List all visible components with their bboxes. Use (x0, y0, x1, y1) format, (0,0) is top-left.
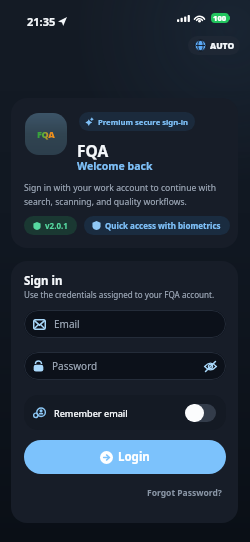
staticText: FQA (37, 128, 55, 140)
staticText: Forgot Password? (147, 487, 222, 499)
staticText: Welcome back (77, 159, 153, 173)
button[interactable]: v2.0.1 (24, 216, 77, 235)
staticText: Email (54, 317, 80, 331)
staticText: Quick access with biometrics (105, 220, 221, 231)
button[interactable]: Login (24, 440, 226, 474)
button[interactable]: Premium secure sign-in (79, 112, 195, 131)
staticText: v2.0.1 (45, 220, 68, 231)
staticText: 21:35 (27, 14, 56, 29)
staticText: Sign in (24, 273, 63, 289)
button[interactable]: Forgot Password? (147, 487, 222, 499)
staticText: AUTO (210, 40, 235, 52)
staticText: Premium secure sign-in (98, 117, 188, 127)
button[interactable]: Show password (204, 361, 217, 372)
staticText: Sign in with your work account to contin… (24, 182, 228, 208)
staticText: 100 (213, 13, 227, 23)
button[interactable]: Remember email (24, 395, 226, 430)
staticText: FQA (77, 140, 109, 161)
button[interactable]: Password (24, 352, 226, 380)
staticText: Remember email (54, 407, 128, 419)
staticText: Password (52, 359, 98, 373)
staticText: Login (118, 449, 150, 465)
button[interactable]: Email (24, 310, 226, 338)
button[interactable]: Quick access with biometrics (84, 216, 230, 235)
button[interactable]: Auto theme (188, 36, 240, 55)
staticText: Use the credentials assigned to your FQA… (24, 289, 215, 300)
